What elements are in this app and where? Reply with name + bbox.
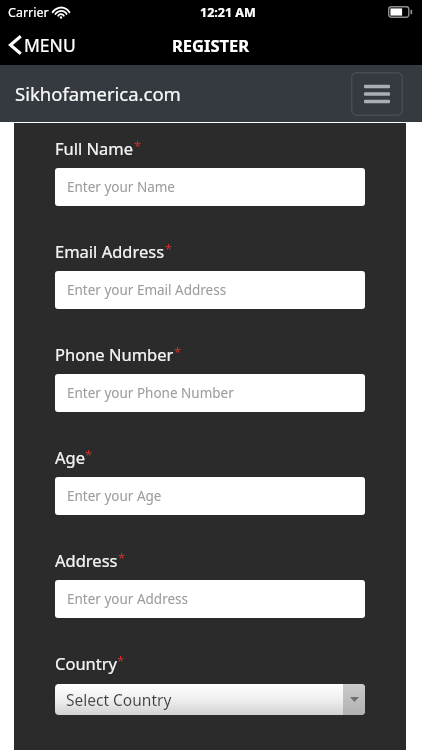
staticText: Full Name [55,137,134,159]
staticText: Age [55,446,85,468]
staticText: Enter your Name [67,178,175,196]
staticText: Sikhofamerica.com [15,81,181,106]
button[interactable]: Back [0,24,88,65]
staticText: Address [55,549,118,571]
staticText: Enter your Address [67,590,188,608]
staticText: 12:21 AM [200,4,256,21]
staticText: Phone Number [55,343,174,365]
staticText: REGISTER [172,34,250,56]
staticText: Select Country [66,689,172,710]
button[interactable]: Enter your Phone Number [55,374,365,412]
staticText: Enter your Age [67,487,162,505]
staticText: * [85,446,93,464]
staticText: * [118,549,126,567]
staticText: Enter your Email Address [67,281,227,299]
other: Back [9,36,21,54]
button[interactable]: Enter your Name [55,168,365,206]
staticText: Carrier [8,4,49,21]
staticText: Enter your Phone Number [67,384,234,402]
button[interactable]: Enter your Address [55,580,365,618]
staticText: * [174,343,182,361]
button[interactable]: Menu [351,72,403,116]
button[interactable]: Enter your Age [55,477,365,515]
staticText: * [117,652,125,670]
staticText: * [134,137,142,155]
button[interactable]: Enter your Email Address [55,271,365,309]
staticText: Email Address [55,240,165,262]
staticText: * [165,240,173,258]
button[interactable]: Select Country [55,684,365,715]
staticText: Country [55,652,117,674]
staticText: MENU [24,33,76,57]
